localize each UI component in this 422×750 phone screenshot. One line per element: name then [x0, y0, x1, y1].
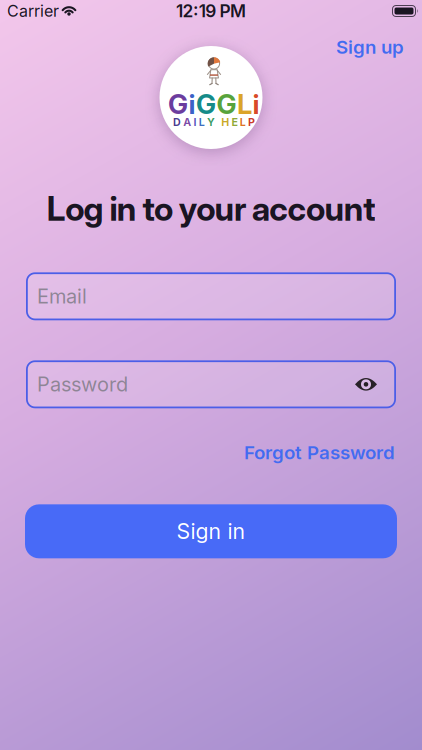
staticText: Forgot Password — [244, 441, 395, 463]
staticText: Carrier — [7, 2, 59, 20]
staticText: G — [217, 88, 237, 120]
staticText: I — [193, 116, 196, 128]
staticText: D — [173, 116, 181, 128]
button[interactable]: Show password — [355, 377, 377, 391]
staticText: G — [196, 88, 216, 120]
staticText: H — [221, 116, 229, 128]
staticText: Sign up — [336, 36, 404, 58]
staticText: A — [183, 116, 191, 128]
staticText: Password — [37, 372, 128, 396]
staticText: G — [168, 88, 188, 120]
staticText: Y — [207, 116, 215, 128]
staticText: Email — [37, 284, 87, 308]
button[interactable]: Sign in — [25, 504, 397, 558]
staticText: L — [240, 116, 246, 128]
staticText: L — [199, 116, 205, 128]
staticText: 12:19 PM — [176, 1, 246, 21]
staticText: L — [237, 88, 252, 120]
staticText: P — [248, 116, 255, 128]
staticText: i — [253, 88, 260, 120]
button[interactable]: Forgot Password — [244, 441, 395, 463]
staticText: Log in to your account — [47, 189, 375, 228]
button[interactable]: Sign up — [336, 36, 404, 58]
staticText: Sign in — [176, 519, 245, 544]
staticText: i — [189, 88, 196, 120]
staticText: E — [231, 116, 237, 128]
